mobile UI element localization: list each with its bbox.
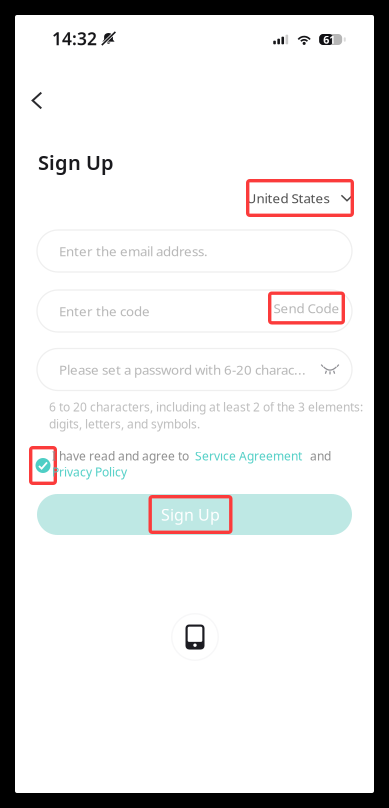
button[interactable]: Show password xyxy=(315,358,345,380)
button[interactable]: Agree to terms and policies xyxy=(29,446,57,485)
staticText: Service Agreement xyxy=(195,448,302,464)
staticText: 61 xyxy=(323,32,335,47)
staticText: and xyxy=(310,448,331,464)
button[interactable]: Service Agreement xyxy=(189,448,302,464)
staticText: digits, letters, and symbols. xyxy=(49,416,200,432)
staticText: Please set a password with 6-20 charac..… xyxy=(59,361,306,378)
button[interactable]: Sign Up xyxy=(37,494,352,535)
staticText: 6 to 20 characters, including at least 2… xyxy=(49,399,363,415)
button[interactable]: Back xyxy=(16,79,58,121)
staticText: Enter the email address. xyxy=(59,242,208,260)
button[interactable]: Send Code xyxy=(268,294,345,327)
staticText: Privacy Policy xyxy=(52,464,127,480)
staticText: Send Code xyxy=(273,299,339,317)
staticText: United States xyxy=(246,189,329,207)
button[interactable]: Privacy Policy xyxy=(52,464,127,480)
staticText: Sign Up xyxy=(38,149,114,176)
staticText: I have read and agree to xyxy=(52,448,189,464)
staticText: 14:32 xyxy=(52,27,97,50)
button[interactable]: Sign up with phone number xyxy=(171,613,219,661)
staticText: Enter the code xyxy=(59,302,150,320)
button[interactable]: United States xyxy=(246,179,354,217)
staticText: Sign Up xyxy=(161,504,220,525)
